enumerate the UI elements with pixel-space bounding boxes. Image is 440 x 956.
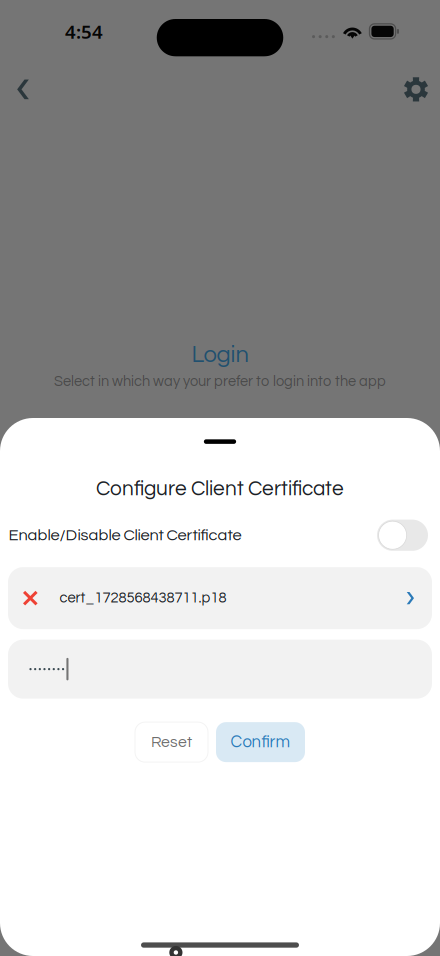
button[interactable]: Reset xyxy=(135,722,208,762)
staticText: 4:54 xyxy=(65,19,103,44)
staticText: Enable/Disable Client Certificate xyxy=(8,527,241,544)
staticText: Login xyxy=(191,342,248,367)
staticText: Reset xyxy=(151,734,192,750)
button[interactable]: Settings xyxy=(393,66,439,112)
staticText: Configure Client Certificate xyxy=(96,478,344,500)
button[interactable]: Confirm xyxy=(216,722,305,762)
button[interactable]: Enable or disable client certificate xyxy=(377,520,428,551)
staticText: Confirm xyxy=(230,733,290,751)
button[interactable]: cert_1728568438711.p18 xyxy=(8,567,432,629)
staticText: Select in which way your prefer to login… xyxy=(54,374,386,389)
staticText: cert_1728568438711.p18 xyxy=(60,591,227,606)
button[interactable]: Back xyxy=(0,66,46,112)
